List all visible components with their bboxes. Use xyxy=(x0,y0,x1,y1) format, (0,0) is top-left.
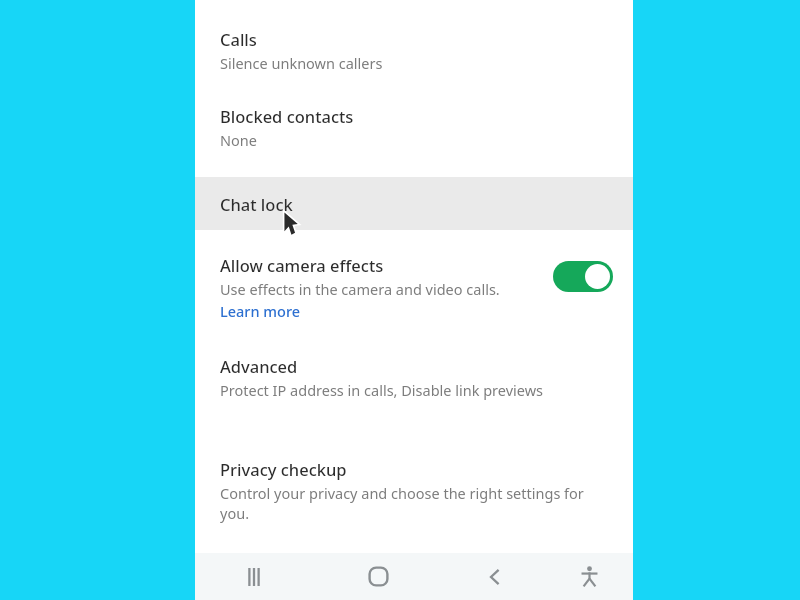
button[interactable]: Blocked contacts xyxy=(195,101,633,156)
staticText: None xyxy=(220,130,257,150)
button[interactable]: Home xyxy=(312,553,444,600)
staticText: Calls xyxy=(220,28,257,50)
button[interactable]: Learn more xyxy=(220,301,301,321)
staticText: Allow camera effects xyxy=(220,254,384,276)
button[interactable]: Accessibility xyxy=(546,553,633,600)
staticText: Control your privacy and choose the righ… xyxy=(220,483,591,523)
staticText: Advanced xyxy=(220,355,298,377)
button[interactable]: Advanced xyxy=(195,351,633,406)
button[interactable]: Allow camera effects toggle, on xyxy=(553,261,613,292)
button[interactable]: Chat lock xyxy=(195,177,633,230)
staticText: Protect IP address in calls, Disable lin… xyxy=(220,380,544,400)
staticText: Privacy checkup xyxy=(220,458,347,480)
staticText: Chat lock xyxy=(220,193,293,215)
button[interactable]: Recents xyxy=(195,553,312,600)
button[interactable]: Back xyxy=(444,553,546,600)
staticText: Blocked contacts xyxy=(220,105,354,127)
button[interactable]: Allow camera effects xyxy=(195,252,633,327)
button[interactable]: Calls xyxy=(195,24,633,79)
button[interactable]: Privacy checkup xyxy=(195,454,633,529)
staticText: Use effects in the camera and video call… xyxy=(220,279,500,299)
staticText: Silence unknown callers xyxy=(220,53,383,73)
